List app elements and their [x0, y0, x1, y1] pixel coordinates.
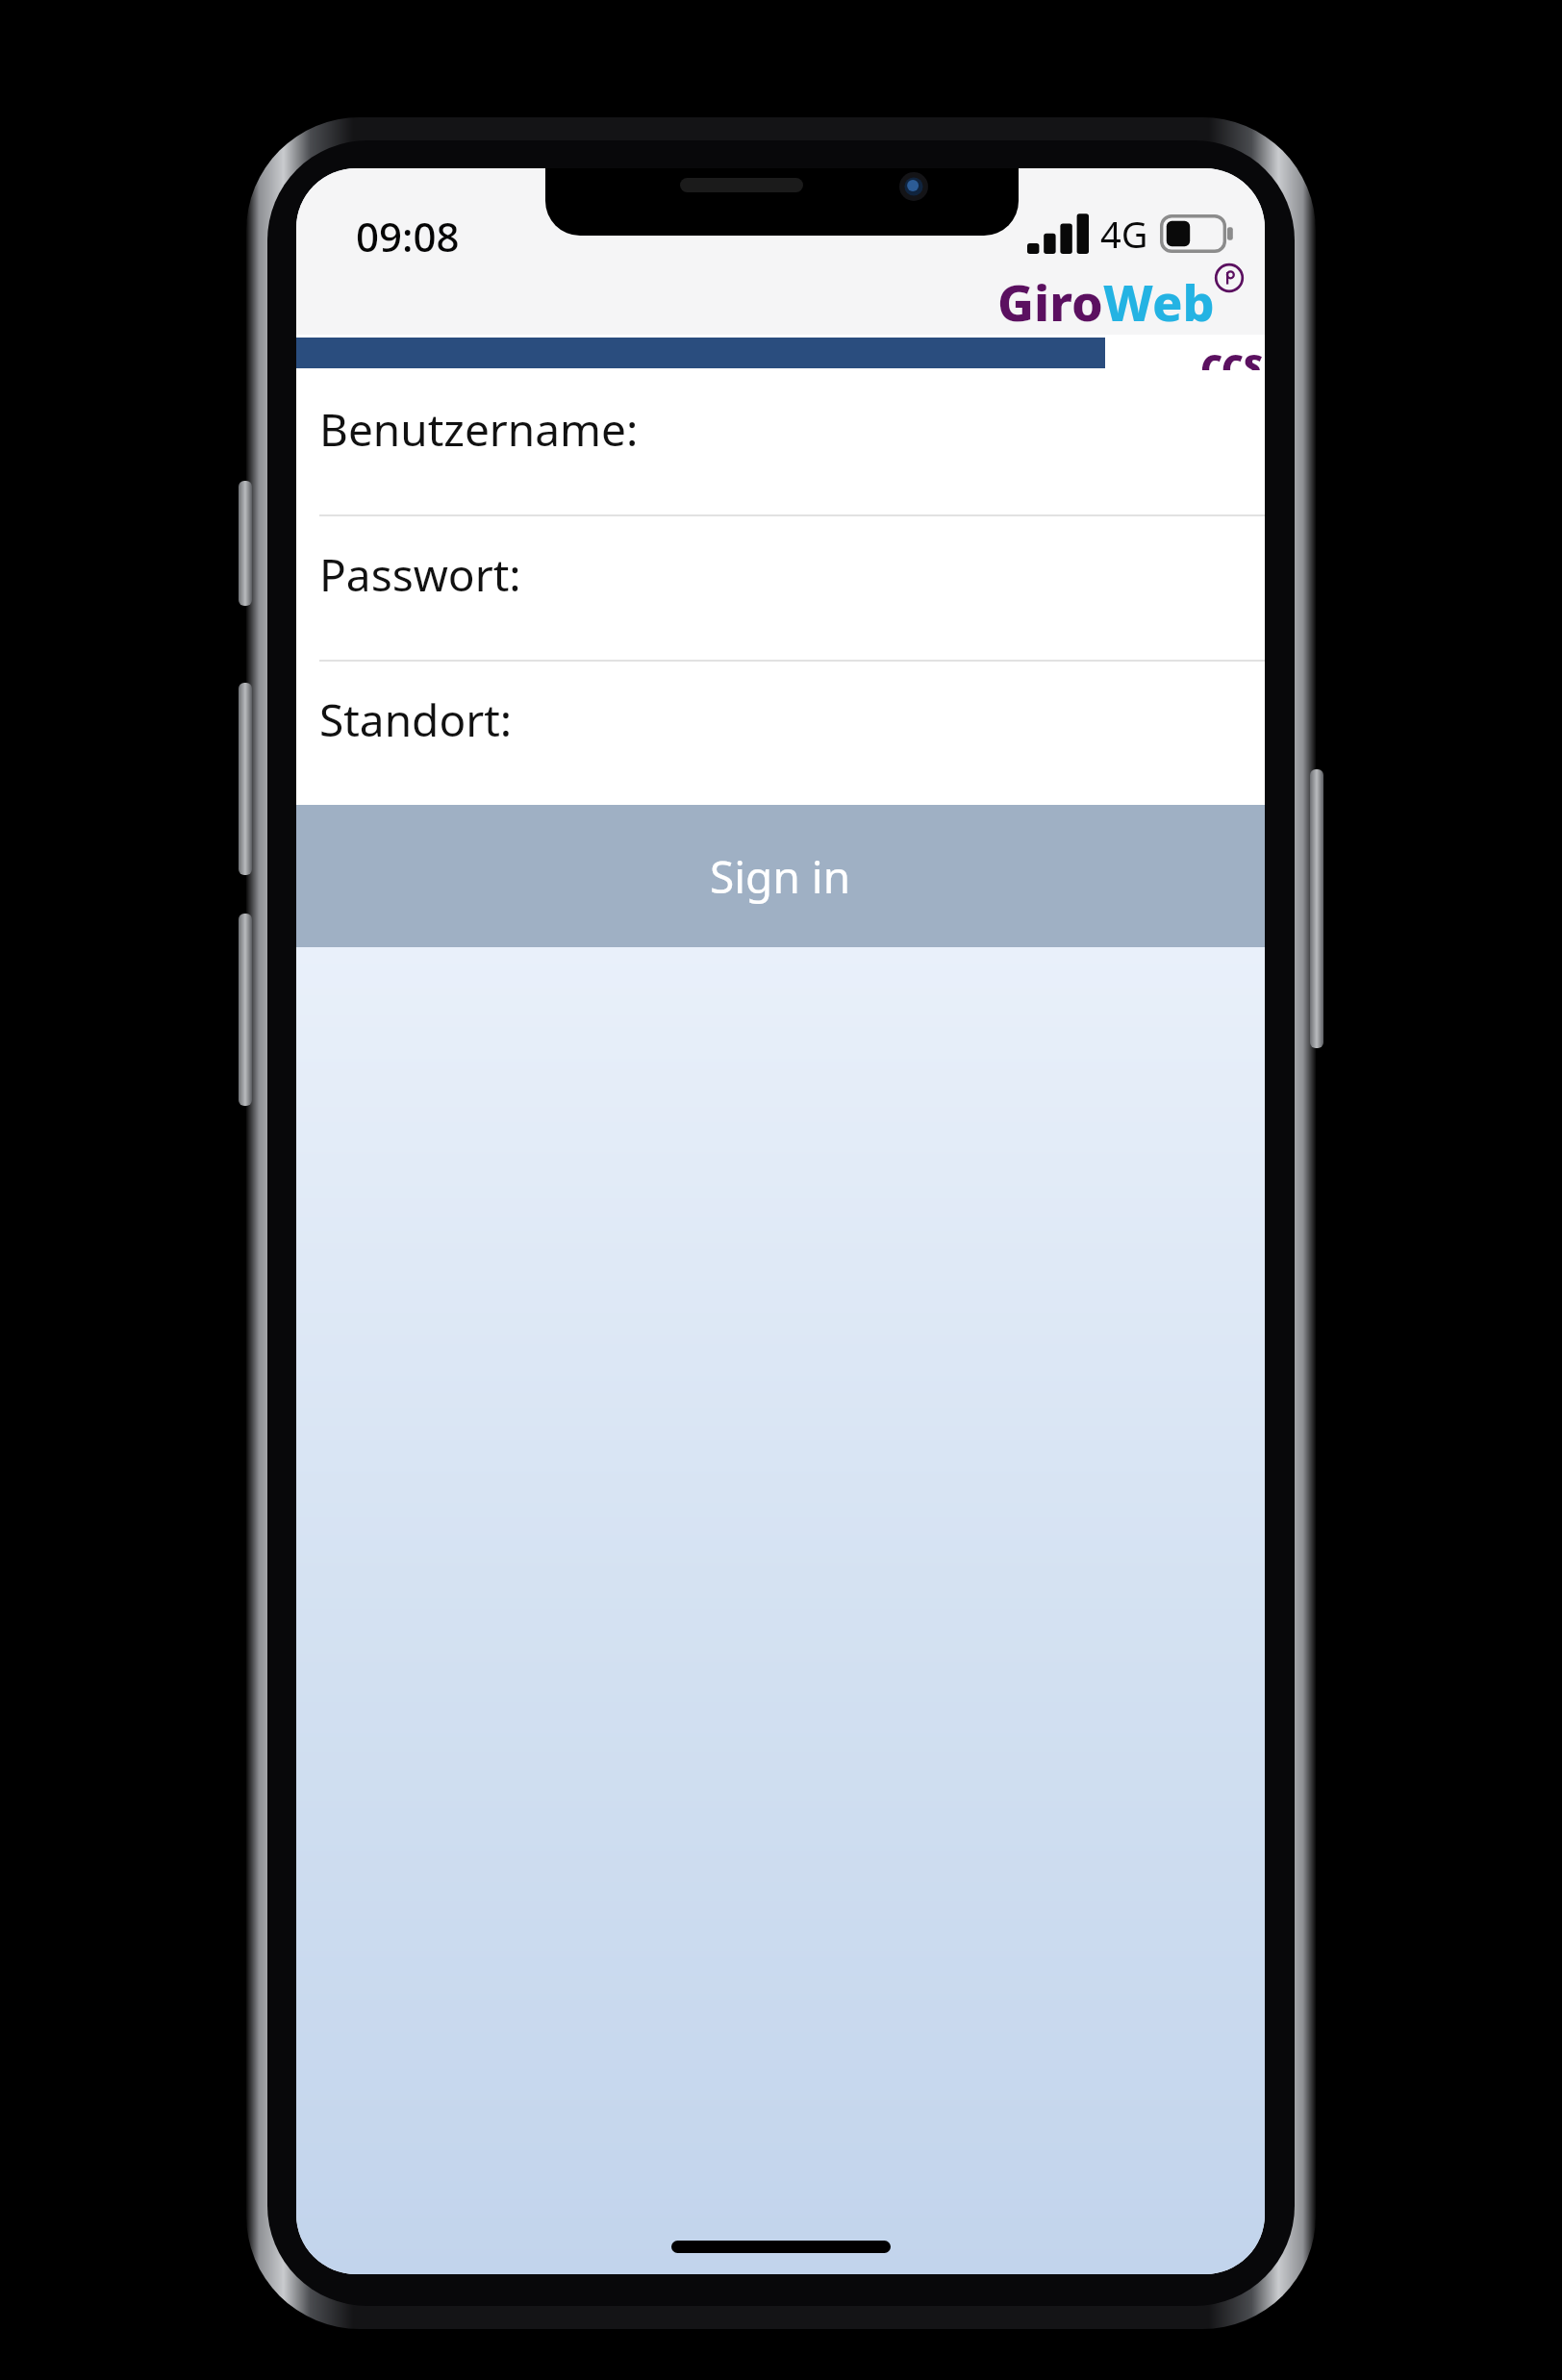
button[interactable]: Benutzername:	[296, 371, 1265, 514]
staticText: Giro	[997, 267, 1103, 336]
button[interactable]: Passwort:	[296, 516, 1265, 660]
other: Battery level	[1160, 214, 1235, 253]
staticText: Sign in	[710, 846, 851, 907]
staticText: ccs	[1200, 334, 1263, 370]
button[interactable]: Standort:	[296, 662, 1265, 805]
staticText: Web	[1103, 267, 1215, 336]
button[interactable]: Sign in	[296, 805, 1265, 947]
staticText: 4G	[1100, 209, 1148, 259]
staticText: Passwort:	[319, 544, 521, 605]
staticText: 09:08	[356, 209, 460, 263]
staticText: Standort:	[319, 689, 513, 750]
staticText: Benutzername:	[319, 399, 639, 460]
other: Cellular signal strength	[1027, 213, 1089, 254]
